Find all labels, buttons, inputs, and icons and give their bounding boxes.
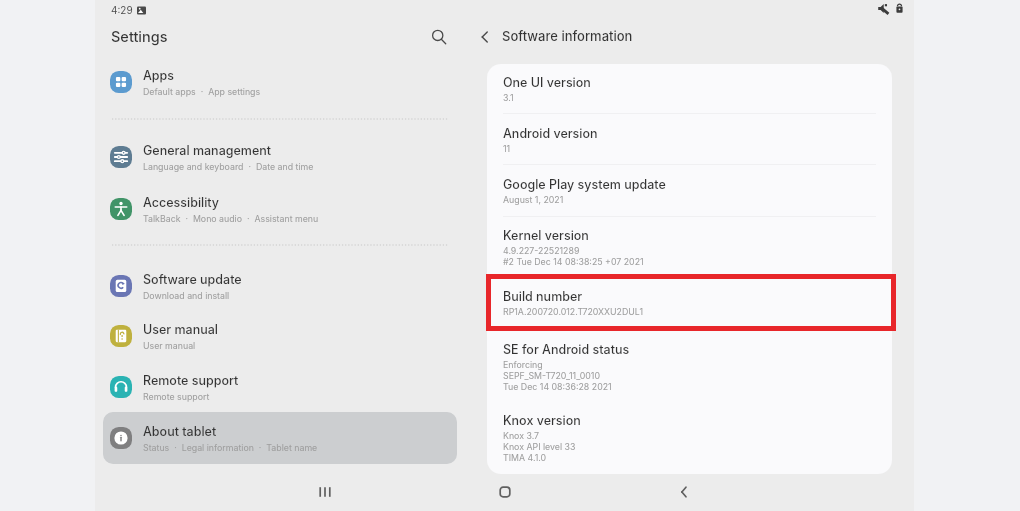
staticText: Download and install — [143, 290, 230, 301]
staticText: User manual — [143, 340, 196, 351]
staticText: User manual — [143, 322, 218, 337]
staticText: Build number — [503, 289, 583, 304]
staticText: Knox version — [503, 413, 581, 428]
staticText: Settings — [111, 28, 168, 46]
button[interactable]: Software update — [103, 264, 457, 308]
staticText: 11 — [503, 143, 511, 154]
staticText: Android version — [503, 126, 598, 141]
staticText: Remote support — [143, 391, 210, 402]
staticText: Language and keyboard · Date and time — [143, 161, 314, 172]
staticText: Remote support — [143, 373, 239, 388]
staticText: Enforcing — [503, 359, 543, 370]
staticText: #2 Tue Dec 14 08:38:25 +07 2021 — [503, 256, 644, 267]
staticText: Kernel version — [503, 228, 589, 243]
staticText: SEPF_SM-T720_11_0010 — [503, 370, 600, 381]
staticText: Knox API level 33 — [503, 441, 576, 452]
staticText: One UI version — [503, 75, 591, 90]
button[interactable]: About tablet — [103, 412, 457, 464]
staticText: 4.9.227-22521289 — [503, 245, 580, 256]
staticText: Apps — [143, 68, 175, 83]
staticText: 4:29 — [111, 4, 133, 16]
button[interactable]: One UI version — [503, 75, 876, 103]
staticText: Default apps · App settings — [143, 86, 261, 97]
button[interactable]: Remote support — [103, 365, 457, 409]
button[interactable]: Recents — [309, 476, 341, 508]
button[interactable]: Build number — [503, 289, 876, 317]
staticText: Status · Legal information · Tablet name — [143, 442, 318, 453]
button[interactable]: Apps — [103, 60, 457, 104]
button[interactable]: General management — [103, 135, 457, 179]
button[interactable]: Android version — [503, 126, 876, 154]
button[interactable]: Back — [472, 24, 498, 50]
staticText: Software information — [502, 28, 633, 44]
button[interactable]: Knox version — [503, 413, 876, 463]
staticText: Accessibility — [143, 195, 220, 210]
staticText: RP1A.200720.012.T720XXU2DUL1 — [503, 306, 643, 317]
staticText: TIMA 4.1.0 — [503, 452, 547, 463]
staticText: TalkBack · Mono audio · Assistant menu — [143, 213, 319, 224]
staticText: Knox 3.7 — [503, 430, 540, 441]
staticText: General management — [143, 143, 272, 158]
staticText: Google Play system update — [503, 177, 666, 192]
staticText: 3.1 — [503, 92, 514, 103]
button[interactable]: Kernel version — [503, 228, 876, 267]
button[interactable]: Settings — [105, 23, 225, 51]
staticText: About tablet — [143, 424, 217, 439]
button[interactable]: SE for Android status — [503, 342, 876, 392]
button[interactable]: Search — [425, 23, 453, 51]
button[interactable]: Back — [669, 476, 701, 508]
button[interactable]: Google Play system update — [503, 177, 876, 205]
staticText: Tue Dec 14 08:36:28 2021 — [503, 381, 612, 392]
staticText: August 1, 2021 — [503, 194, 564, 205]
button[interactable]: User manual — [103, 314, 457, 358]
button[interactable]: Accessibility — [103, 187, 457, 231]
button[interactable]: Home — [489, 476, 521, 508]
staticText: Software update — [143, 272, 242, 287]
staticText: SE for Android status — [503, 342, 630, 357]
